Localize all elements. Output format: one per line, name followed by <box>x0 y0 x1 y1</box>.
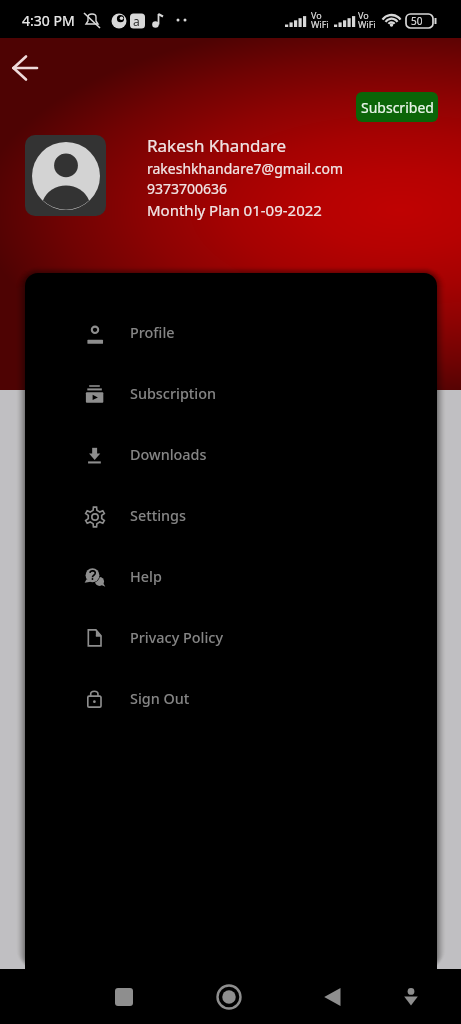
staticText: Sign Out <box>130 689 190 709</box>
button[interactable]: Subscribed <box>356 92 438 122</box>
staticText: Subscription <box>130 384 217 404</box>
button[interactable]: Home <box>205 973 253 1021</box>
staticText: Privacy Policy <box>130 628 223 648</box>
staticText: Profile <box>130 323 175 343</box>
button[interactable]: Back <box>309 973 357 1021</box>
staticText: Vo WiFi <box>311 9 329 31</box>
button[interactable]: Privacy Policy <box>25 608 437 669</box>
staticText: 9373700636 <box>147 179 228 198</box>
staticText: Downloads <box>130 445 207 465</box>
button[interactable]: Help <box>25 547 437 608</box>
staticText: Help <box>130 567 162 587</box>
button[interactable]: Subscription <box>25 364 437 425</box>
button[interactable]: Profile <box>25 303 437 364</box>
staticText: 4:30 PM <box>22 11 75 30</box>
button[interactable]: Back <box>5 48 45 88</box>
staticText: rakeshkhandare7@gmail.com <box>147 159 343 178</box>
staticText: a <box>133 13 140 29</box>
staticText: Monthly Plan 01-09-2022 <box>147 200 322 220</box>
button[interactable]: Recents <box>100 973 148 1021</box>
staticText: Subscribed <box>361 98 434 117</box>
button[interactable]: Settings <box>25 486 437 547</box>
staticText: Vo WiFi <box>358 9 376 31</box>
button[interactable]: Profile photo <box>25 135 106 216</box>
staticText: Settings <box>130 506 187 526</box>
button[interactable]: Sign Out <box>25 669 437 730</box>
staticText: Rakesh Khandare <box>147 134 287 157</box>
button[interactable]: Downloads <box>25 425 437 486</box>
staticText: 50 <box>411 14 423 28</box>
button[interactable]: Hide keyboard <box>387 973 435 1021</box>
